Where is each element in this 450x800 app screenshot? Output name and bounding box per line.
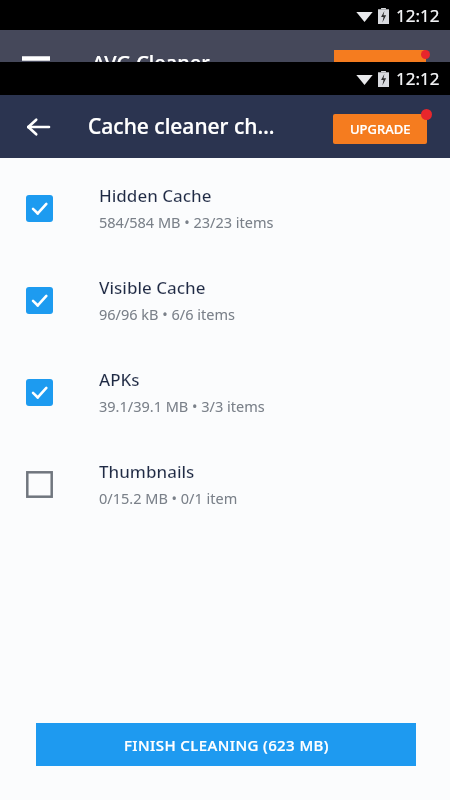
staticText: Cache cleaner ch… <box>88 112 275 141</box>
staticText: Thumbnails <box>99 460 195 483</box>
staticText: APKs <box>99 368 140 391</box>
button[interactable]: FINISH CLEANING (623 MB) <box>36 723 416 766</box>
button[interactable]: APKs <box>0 361 450 423</box>
staticText: 584/584 MB • 23/23 items <box>99 212 274 232</box>
button[interactable]: Visible Cache <box>0 269 450 331</box>
staticText: 12:12 <box>396 67 440 90</box>
staticText: FINISH CLEANING (623 MB) <box>124 735 329 755</box>
staticText: Visible Cache <box>99 276 206 299</box>
staticText: 39.1/39.1 MB • 3/3 items <box>99 396 265 416</box>
staticText: 96/96 kB • 6/6 items <box>99 304 235 324</box>
button[interactable]: Back <box>16 105 60 149</box>
button[interactable]: Hidden Cache <box>0 177 450 239</box>
staticText: 12:12 <box>396 4 440 27</box>
button[interactable]: UPGRADE <box>333 114 427 144</box>
staticText: Hidden Cache <box>99 184 212 207</box>
staticText: AVG Cleaner <box>92 49 210 76</box>
staticText: UPGRADE <box>350 120 411 138</box>
staticText: 0/15.2 MB • 0/1 item <box>99 488 238 508</box>
button[interactable]: Thumbnails <box>0 453 450 515</box>
